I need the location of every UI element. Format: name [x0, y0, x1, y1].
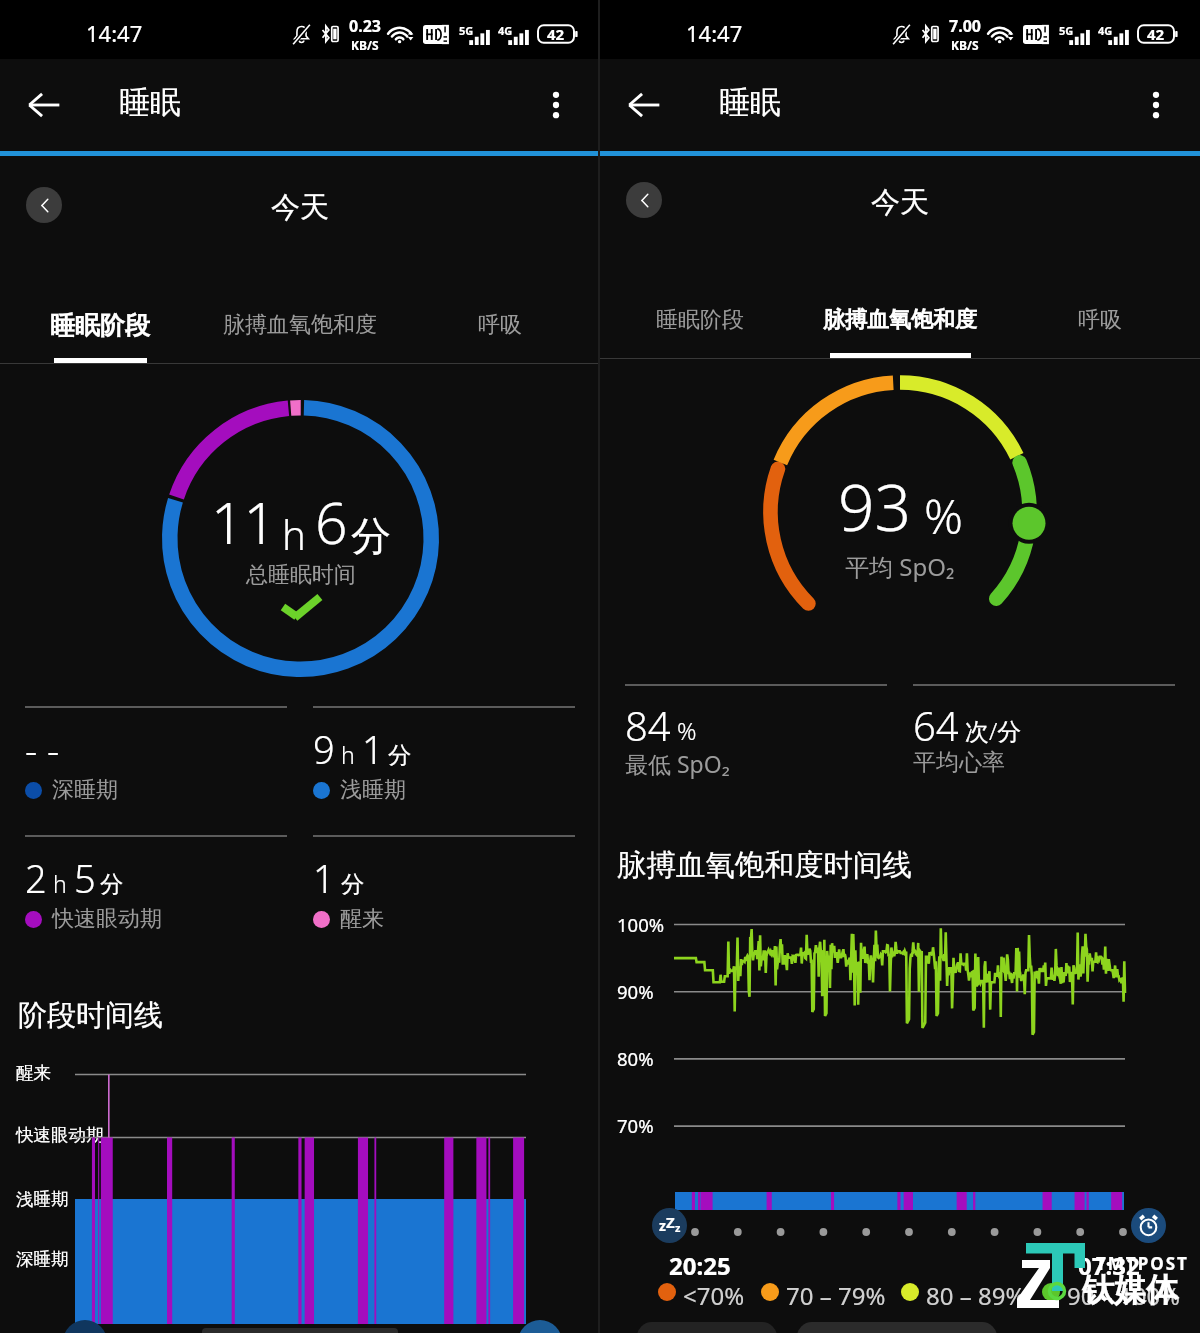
staticText: 42 [547, 24, 565, 44]
staticText: % [924, 483, 963, 548]
staticText: 5 [74, 852, 96, 904]
staticText: TMTPOST [1096, 1252, 1189, 1275]
staticText: 6 [315, 483, 348, 561]
staticText: 睡眠 [719, 83, 781, 122]
button[interactable]: 上一天 [26, 187, 62, 223]
staticText: 80% [617, 1046, 654, 1071]
staticText: KB/S [951, 37, 979, 53]
staticText: - - [25, 723, 60, 775]
staticText: 1 [362, 723, 384, 775]
staticText: 2 [25, 852, 47, 904]
button[interactable]: 80 – 89% [901, 1279, 1026, 1305]
button[interactable]: 2 [25, 835, 287, 945]
staticText: 14:47 [86, 18, 143, 48]
button[interactable]: 呼吸 [400, 299, 600, 351]
button[interactable]: 9 [313, 706, 575, 816]
staticText: 钛媒体 [1082, 1270, 1178, 1310]
staticText: 90% [617, 979, 654, 1004]
button[interactable]: 起床时间 [1131, 1208, 1166, 1243]
staticText: 70 – 79% [786, 1279, 886, 1305]
staticText: 平均 SpO₂ [845, 550, 955, 583]
staticText: 阶段时间线 [18, 997, 163, 1034]
staticText: 分 [388, 741, 411, 770]
staticText: <70% [683, 1279, 745, 1305]
staticText: 14:47 [686, 18, 743, 48]
staticText: 07:32 [1078, 1249, 1140, 1282]
staticText: 呼吸 [1078, 306, 1122, 334]
button[interactable]: 脉搏血氧饱和度 [200, 299, 400, 351]
staticText: 5G [459, 23, 474, 38]
button[interactable]: 90 – 100% [1042, 1279, 1181, 1305]
button[interactable]: 脉搏血氧饱和度 [800, 294, 1000, 346]
staticText: KB/S [351, 37, 379, 53]
staticText: 分 [100, 870, 123, 899]
staticText: h [341, 739, 355, 770]
button[interactable]: 84 [625, 684, 887, 794]
staticText: 今天 [271, 189, 329, 226]
staticText: 1 [313, 852, 335, 904]
staticText: 84 [625, 698, 671, 752]
staticText: 深睡期 [16, 1248, 69, 1270]
staticText: 70% [617, 1113, 654, 1138]
staticText: 9 [313, 723, 335, 775]
button[interactable]: 更多选项 [1126, 75, 1186, 135]
staticText: 睡眠阶段 [656, 306, 744, 334]
staticText: 100% [617, 912, 665, 937]
staticText: 次/分 [965, 714, 1022, 747]
staticText: z [659, 1216, 666, 1235]
button[interactable]: 睡眠阶段 [0, 299, 200, 351]
button[interactable]: 返回 [14, 75, 74, 135]
staticText: 5G [1059, 23, 1074, 38]
staticText: 浅睡期 [340, 776, 406, 804]
staticText: 7.00 [949, 15, 981, 37]
staticText: 今天 [871, 184, 929, 221]
staticText: z [675, 1220, 681, 1235]
staticText: 分 [341, 870, 364, 899]
button[interactable]: 更多选项 [526, 75, 586, 135]
staticText: 脉搏血氧饱和度 [223, 311, 377, 339]
staticText: 90 – 100% [1067, 1279, 1181, 1305]
staticText: 快速眼动期 [52, 905, 162, 933]
staticText: 呼吸 [478, 311, 522, 339]
staticText: 4G [498, 23, 513, 38]
staticText: 80 – 89% [926, 1279, 1026, 1305]
button[interactable]: 睡眠阶段 [600, 294, 800, 346]
staticText: 11 [211, 483, 277, 561]
button[interactable]: 64 [913, 684, 1175, 794]
staticText: 快速眼动期 [16, 1124, 104, 1146]
staticText: 醒来 [340, 905, 384, 933]
button[interactable]: <70% [658, 1279, 745, 1305]
staticText: 分 [351, 511, 391, 561]
staticText: 睡眠阶段 [50, 310, 150, 341]
button[interactable]: - - [25, 706, 287, 816]
button[interactable]: 1 [313, 835, 575, 945]
staticText: 64 [913, 698, 959, 752]
button[interactable]: 入睡时间 [652, 1208, 687, 1243]
button[interactable]: 呼吸 [1000, 294, 1200, 346]
staticText: 20:25 [669, 1249, 731, 1282]
staticText: 4G [1098, 23, 1113, 38]
staticText: 深睡期 [52, 776, 118, 804]
staticText: h [53, 868, 67, 899]
button[interactable]: 上一天 [626, 182, 662, 218]
staticText: 总睡眠时间 [246, 561, 356, 589]
staticText: Z [666, 1212, 675, 1232]
staticText: h [282, 507, 306, 561]
staticText: 睡眠 [119, 83, 181, 122]
staticText: 脉搏血氧饱和度时间线 [617, 847, 912, 884]
staticText: 脉搏血氧饱和度 [823, 306, 977, 334]
staticText: 浅睡期 [16, 1188, 69, 1210]
staticText: 醒来 [16, 1062, 51, 1084]
button[interactable]: 70 – 79% [761, 1279, 886, 1305]
button[interactable]: 返回 [614, 75, 674, 135]
staticText: 93 [838, 463, 912, 550]
staticText: % [677, 714, 697, 747]
staticText: 最低 SpO₂ [625, 748, 730, 779]
staticText: 0.23 [349, 15, 381, 37]
staticText: 42 [1147, 24, 1165, 44]
staticText: 平均心率 [913, 748, 1005, 777]
